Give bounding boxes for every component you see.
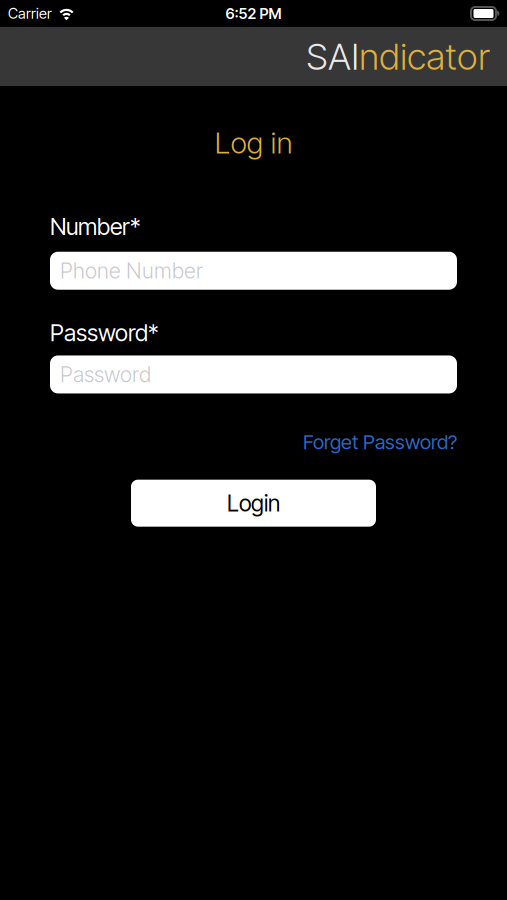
staticText: Password [60,361,151,387]
staticText: ndicator [359,34,490,79]
staticText: Number* [50,212,141,241]
staticText: Password* [50,319,159,347]
staticText: 6:52 PM [225,4,281,23]
button[interactable]: Phone Number [50,252,457,290]
staticText: Phone Number [60,258,203,284]
button[interactable]: Login [131,480,376,527]
staticText: Log in [214,125,292,160]
staticText: SAI [306,34,359,79]
button[interactable]: Forget Password? [303,430,457,454]
staticText: Carrier [8,5,52,22]
button[interactable]: Password [50,355,457,393]
staticText: Login [227,489,280,517]
staticText: Forget Password? [303,430,457,454]
